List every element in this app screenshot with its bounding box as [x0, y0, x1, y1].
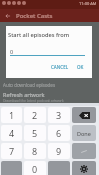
staticText: 5 [32, 127, 38, 139]
button[interactable]: Enter [72, 143, 96, 159]
staticText: 0 [32, 163, 38, 175]
button[interactable]: 5 [24, 125, 46, 141]
staticText: Done [77, 130, 91, 137]
staticText: CANCEL [51, 64, 69, 70]
button[interactable]: Settings [72, 161, 96, 175]
button[interactable]: OK [75, 62, 86, 72]
button[interactable]: 4 [1, 125, 22, 141]
staticText: 0 [10, 48, 14, 55]
staticText: Refresh artwork [3, 91, 45, 98]
staticText: Download the latest podcast artwork [3, 98, 64, 103]
button[interactable]: Done [72, 125, 96, 141]
button[interactable] [1, 161, 22, 175]
button[interactable]: 2 [24, 107, 46, 123]
staticText: 2 [32, 109, 38, 121]
staticText: Auto download episodes [3, 82, 56, 88]
staticText: Start all episodes from [8, 31, 70, 39]
staticText: 6 [56, 127, 62, 139]
button[interactable]: 8 [24, 143, 46, 159]
staticText: Pocket Casts [16, 12, 53, 20]
button[interactable]: Backspace [72, 107, 96, 123]
staticText: 7 [9, 145, 15, 157]
button[interactable]: 3 [48, 107, 70, 123]
button[interactable]: Back [0, 9, 15, 22]
staticText: 4 [9, 127, 15, 139]
staticText: 9 [56, 145, 62, 157]
staticText: OK [77, 64, 84, 70]
button[interactable]: CANCEL [49, 62, 71, 72]
button[interactable]: 0 [24, 161, 46, 175]
staticText: 1 [9, 109, 15, 121]
button[interactable]: 9 [48, 143, 70, 159]
staticText: 11:00 AM [79, 1, 97, 6]
staticText: 3 [56, 109, 62, 121]
button[interactable]: 7 [1, 143, 22, 159]
button[interactable] [48, 161, 70, 175]
staticText: 8 [32, 145, 38, 157]
button[interactable]: 1 [1, 107, 22, 123]
button[interactable]: 6 [48, 125, 70, 141]
